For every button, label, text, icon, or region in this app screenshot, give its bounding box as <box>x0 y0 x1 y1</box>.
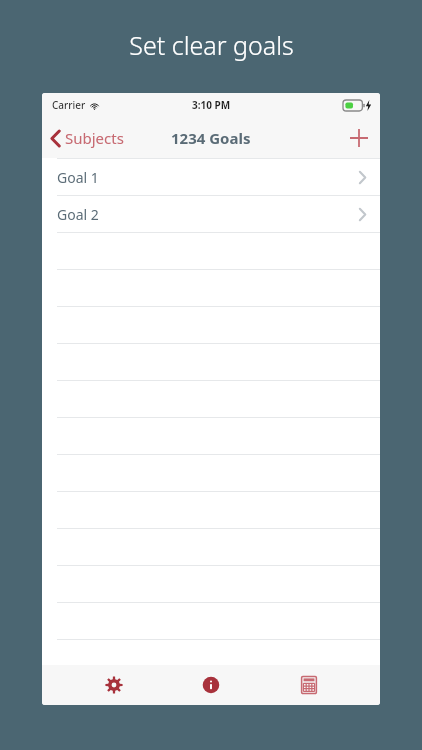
staticText: Carrier <box>52 98 86 112</box>
staticText: 1234 Goals <box>171 128 251 148</box>
staticText: Set clear goals <box>129 28 294 62</box>
staticText: Goal 1 <box>57 168 359 187</box>
button[interactable]: Calculator <box>283 665 335 705</box>
button[interactable]: Goal 2 <box>42 196 380 232</box>
staticText: Goal 2 <box>57 205 359 224</box>
staticText: Subjects <box>65 128 124 148</box>
button[interactable]: Settings <box>88 665 140 705</box>
staticText: 3:10 PM <box>192 98 231 112</box>
button[interactable]: Goal 1 <box>42 159 380 195</box>
button[interactable]: Info <box>185 665 237 705</box>
button[interactable]: Subjects <box>42 122 134 154</box>
button[interactable]: Add goal <box>338 121 380 155</box>
